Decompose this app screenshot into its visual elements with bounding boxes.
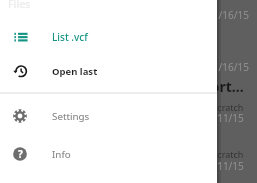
staticText: 11/11/15 (202, 159, 244, 173)
button[interactable]: List .vcf (0, 20, 217, 54)
staticText: Backup 11/16/15 (170, 8, 249, 22)
staticText: Settings (52, 110, 90, 123)
button[interactable]: Info (0, 137, 217, 171)
staticText: scratch (213, 148, 244, 160)
button[interactable]: Settings (0, 99, 217, 133)
staticText: Info (52, 148, 71, 161)
staticText: Files (8, 0, 31, 11)
staticText: List .vcf (52, 30, 88, 44)
staticText: Open last (52, 65, 98, 78)
staticText: Backup 11/16/15 (170, 60, 249, 74)
staticText: ? (18, 147, 23, 161)
staticText: 11/11/15 (202, 111, 244, 125)
button[interactable]: Open last (0, 54, 217, 88)
staticText: scratch (213, 101, 244, 113)
staticText: Export... (186, 77, 244, 96)
